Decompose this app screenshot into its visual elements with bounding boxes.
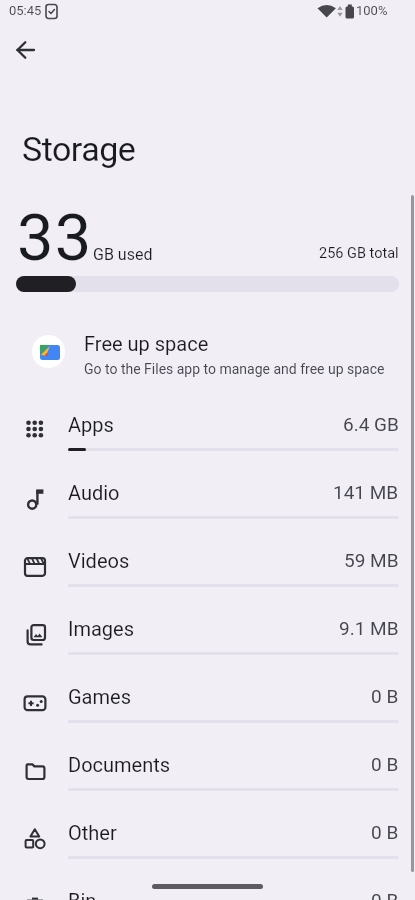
staticText: Storage	[22, 129, 136, 169]
staticText: 33	[17, 200, 93, 276]
staticText: 141 MB	[333, 481, 399, 503]
staticText: Free up space	[84, 332, 209, 355]
button[interactable]: Other	[0, 799, 415, 867]
button[interactable]	[3, 27, 49, 73]
staticText: Images	[68, 617, 135, 640]
staticText: Games	[68, 685, 131, 708]
staticText: Other	[68, 821, 117, 844]
staticText: 0 B	[371, 889, 399, 900]
staticText: 256 GB total	[319, 245, 399, 262]
staticText: Videos	[68, 549, 130, 572]
staticText: 0 B	[371, 753, 399, 775]
staticText: 0 B	[371, 685, 399, 707]
button[interactable]: Audio	[0, 459, 415, 527]
staticText: 100%	[356, 3, 388, 18]
staticText: Documents	[68, 753, 171, 776]
button[interactable]: Documents	[0, 731, 415, 799]
staticText: Audio	[68, 481, 120, 504]
staticText: 05:45	[9, 3, 42, 18]
button[interactable]: Free up space	[0, 323, 415, 385]
button[interactable]: Games	[0, 663, 415, 731]
staticText: Bin	[68, 889, 97, 900]
button[interactable]: Apps	[0, 391, 415, 459]
staticText: Apps	[68, 413, 114, 436]
staticText: 6.4 GB	[343, 413, 399, 435]
button[interactable]: Images	[0, 595, 415, 663]
staticText: 9.1 MB	[339, 617, 399, 639]
staticText: 59 MB	[344, 549, 399, 571]
staticText: Go to the Files app to manage and free u…	[84, 361, 385, 377]
staticText: 0 B	[371, 821, 399, 843]
staticText: GB used	[93, 245, 153, 264]
button[interactable]: Videos	[0, 527, 415, 595]
button[interactable]: Bin	[0, 867, 415, 900]
